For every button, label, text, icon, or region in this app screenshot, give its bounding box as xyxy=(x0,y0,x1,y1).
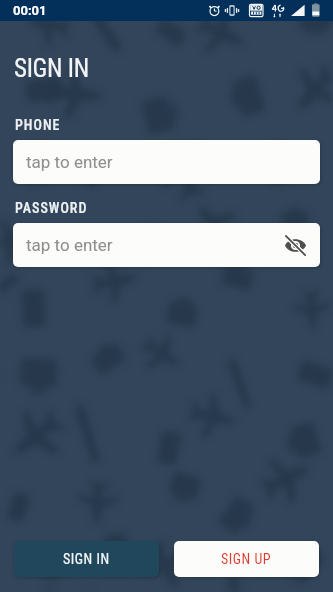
staticText: SIGN UP xyxy=(221,551,272,567)
staticText: tap to enter xyxy=(26,152,113,172)
button[interactable]: SIGN UP xyxy=(174,541,319,577)
button[interactable]: tap to enter xyxy=(13,140,320,184)
staticText: tap to enter xyxy=(26,235,113,255)
button[interactable]: Show password xyxy=(282,232,308,258)
staticText: PASSWORD xyxy=(15,200,88,216)
staticText: SIGN IN xyxy=(14,54,89,83)
button[interactable]: tap to enter xyxy=(13,223,320,267)
staticText: SIGN IN xyxy=(63,551,110,567)
staticText: PHONE xyxy=(15,117,61,133)
staticText: 00:01 xyxy=(13,3,47,18)
button[interactable]: SIGN IN xyxy=(14,541,159,577)
